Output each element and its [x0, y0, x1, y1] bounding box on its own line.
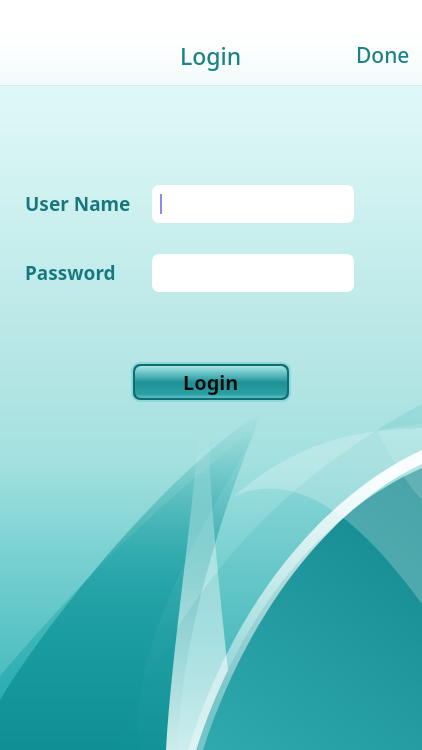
- button[interactable]: [152, 185, 354, 223]
- button[interactable]: [152, 254, 354, 292]
- staticText: Password: [25, 260, 116, 286]
- button[interactable]: Login: [170, 37, 252, 74]
- staticText: Login: [180, 40, 242, 71]
- staticText: Login: [183, 369, 239, 396]
- staticText: User Name: [25, 191, 131, 217]
- button[interactable]: Done: [344, 37, 422, 74]
- button[interactable]: Login: [135, 366, 287, 398]
- staticText: Done: [356, 41, 410, 70]
